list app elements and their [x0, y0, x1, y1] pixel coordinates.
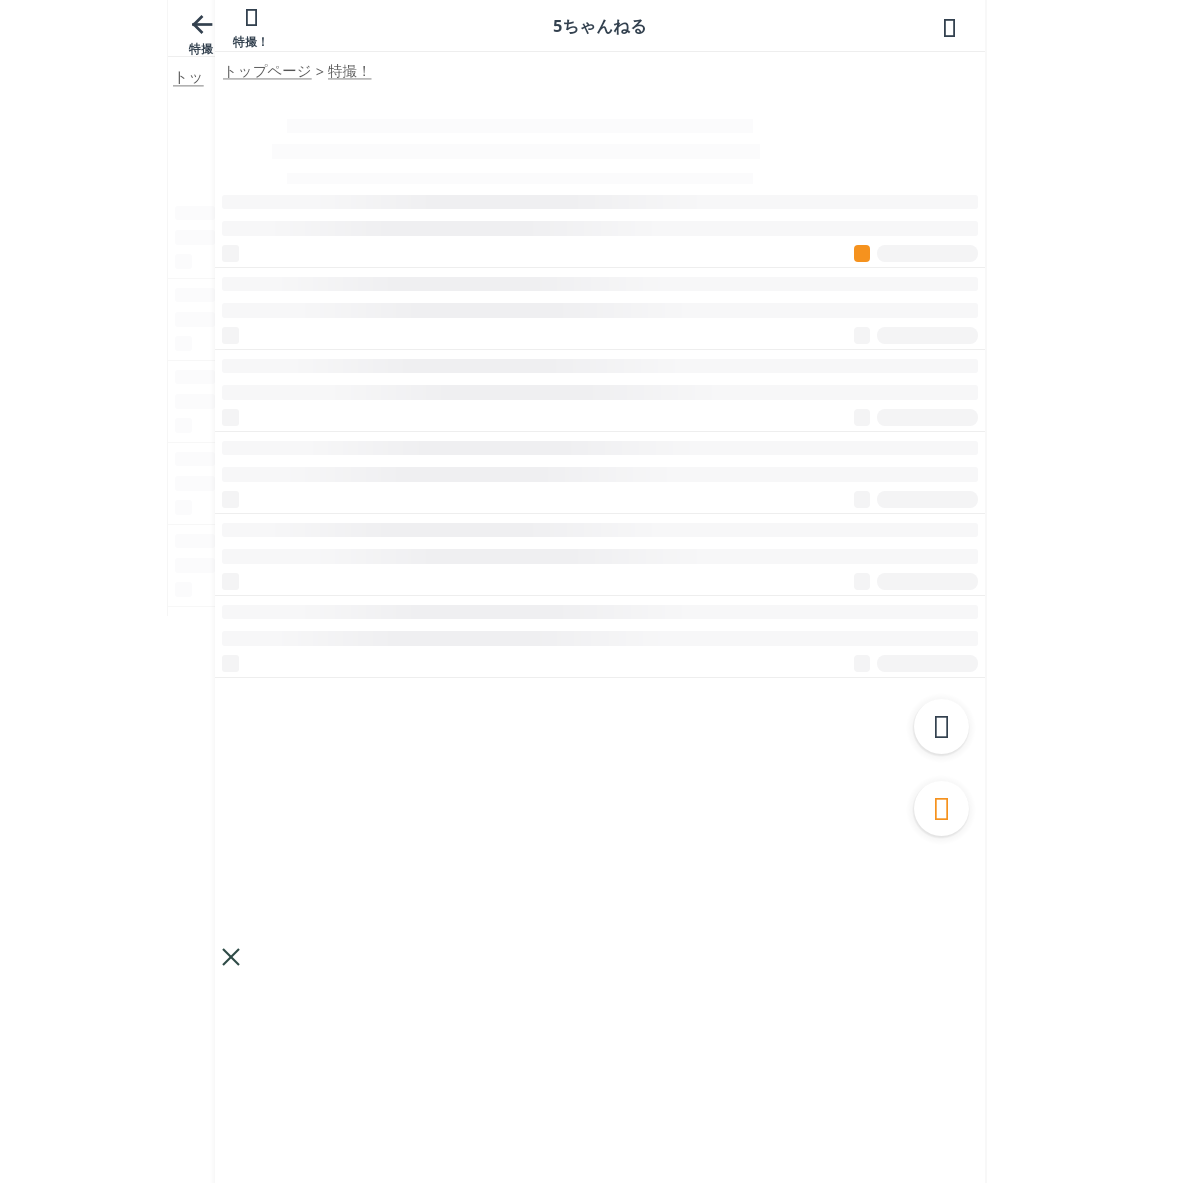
button[interactable]: Close — [216, 942, 246, 972]
button[interactable]: Menu — [934, 13, 964, 43]
button[interactable]: 特撮！ — [328, 62, 372, 80]
button[interactable]: Scroll to bottom — [914, 699, 969, 754]
button[interactable]: トップページ — [223, 62, 312, 80]
staticText: 特撮！ — [233, 34, 269, 49]
staticText: トップページ — [173, 68, 215, 87]
staticText: 5ちゃんねる — [553, 14, 647, 37]
staticText: > — [312, 61, 328, 81]
button[interactable]: Board — [233, 9, 269, 49]
staticText: 特撮 — [189, 41, 213, 56]
button[interactable]: New post — [914, 781, 969, 836]
